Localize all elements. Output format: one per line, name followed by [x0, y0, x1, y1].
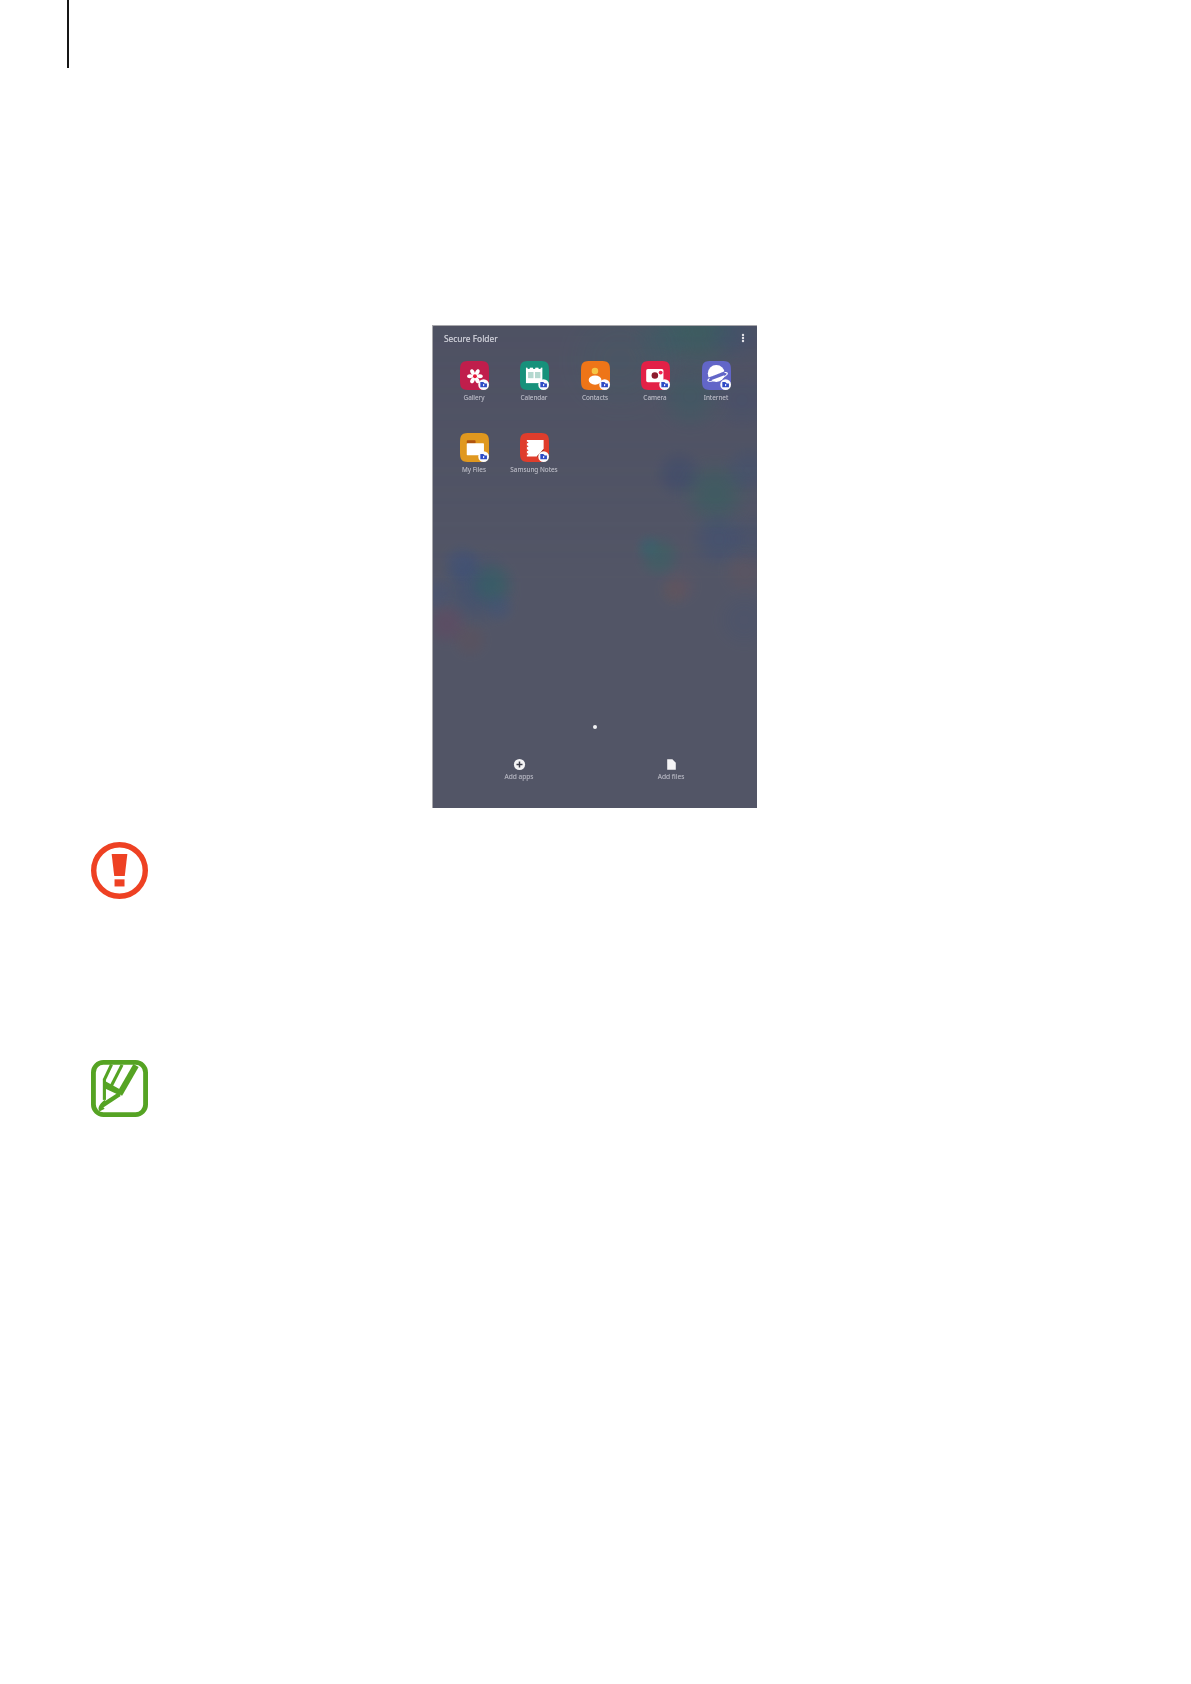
staticText: Add apps	[489, 772, 549, 781]
button[interactable]: Internet	[686, 361, 746, 402]
staticText: Gallery	[444, 393, 504, 402]
staticText: Add files	[641, 772, 701, 781]
staticText: Samsung Notes	[504, 465, 564, 474]
staticText: Contacts	[565, 393, 625, 402]
staticText: Internet	[686, 393, 746, 402]
button[interactable]: Contacts	[565, 361, 625, 402]
button[interactable]: Calendar	[504, 361, 564, 402]
button[interactable]: Add files	[641, 758, 701, 781]
button[interactable]: Add apps	[489, 758, 549, 781]
staticText: Camera	[625, 393, 685, 402]
button[interactable]: More options	[733, 328, 753, 348]
staticText: Calendar	[504, 393, 564, 402]
staticText: Secure Folder	[444, 333, 498, 344]
staticText: My Files	[444, 465, 504, 474]
button[interactable]: Camera	[625, 361, 685, 402]
button[interactable]: Samsung Notes	[504, 433, 564, 474]
button[interactable]: My Files	[444, 433, 504, 474]
button[interactable]: Gallery	[444, 361, 504, 402]
